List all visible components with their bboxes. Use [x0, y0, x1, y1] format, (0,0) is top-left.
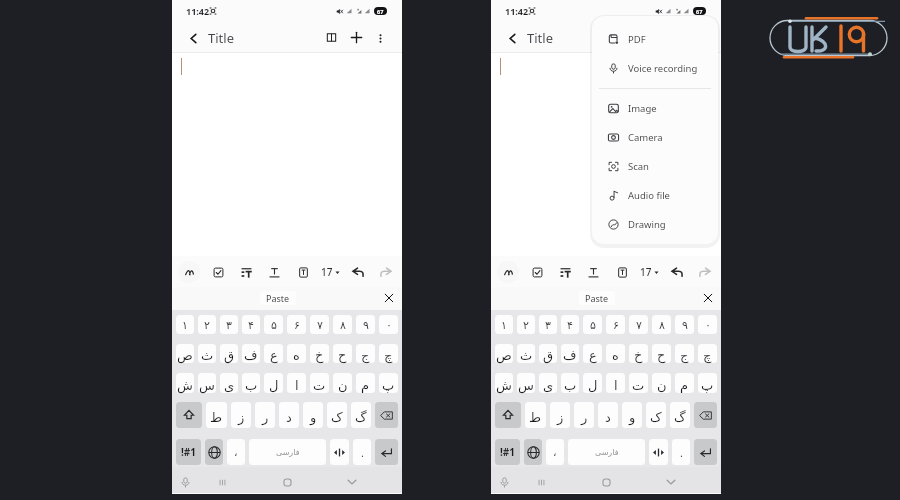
button[interactable]: ب — [561, 373, 579, 393]
button[interactable]: Period — [672, 439, 690, 465]
button[interactable]: ف — [561, 344, 579, 363]
button[interactable]: 17 — [640, 265, 659, 279]
button[interactable]: خ — [629, 344, 648, 363]
button[interactable]: ۶ — [606, 315, 625, 334]
button[interactable]: PDF — [592, 25, 718, 54]
button[interactable]: ف — [242, 344, 260, 363]
button[interactable]: ۳ — [220, 315, 238, 334]
button[interactable]: ز — [550, 402, 570, 428]
button[interactable]: د — [279, 402, 299, 428]
button[interactable]: ق — [539, 344, 557, 363]
button[interactable]: Enter — [375, 439, 398, 465]
button[interactable]: 17 — [321, 265, 340, 279]
button[interactable]: ث — [198, 344, 216, 363]
button[interactable]: ص — [495, 344, 513, 363]
button[interactable]: Redo — [376, 262, 396, 282]
button[interactable]: ص — [176, 344, 194, 363]
button[interactable]: Undo — [667, 262, 687, 282]
button[interactable]: ق — [220, 344, 238, 363]
button[interactable]: Cursor — [330, 439, 349, 465]
button[interactable]: پ — [379, 373, 398, 393]
button[interactable]: Close — [700, 290, 716, 306]
button[interactable]: Recents — [530, 471, 552, 493]
button[interactable]: Scan — [592, 152, 718, 181]
button[interactable]: Back — [179, 24, 207, 52]
button[interactable]: Redo — [695, 262, 715, 282]
button[interactable]: Pen — [497, 261, 519, 283]
button[interactable]: ر — [574, 402, 594, 428]
button[interactable]: Back — [498, 24, 526, 52]
button[interactable]: ۸ — [333, 315, 352, 334]
button[interactable]: View mode — [638, 25, 663, 50]
button[interactable]: ۹ — [675, 315, 694, 334]
button[interactable]: Text style — [583, 262, 603, 282]
button[interactable]: ن — [652, 373, 671, 393]
button[interactable]: Voice input — [174, 471, 196, 493]
button[interactable]: Paragraph — [555, 262, 575, 282]
button[interactable]: Symbols — [495, 439, 520, 465]
button[interactable]: ح — [333, 344, 352, 363]
button[interactable]: Paste — [266, 292, 290, 304]
button[interactable]: Pen — [178, 261, 200, 283]
button[interactable]: ۴ — [561, 315, 579, 334]
button[interactable]: Comma — [546, 439, 564, 465]
button[interactable]: ک — [646, 402, 666, 428]
button[interactable]: ل — [583, 373, 602, 393]
button[interactable]: ج — [356, 344, 375, 363]
button[interactable]: Camera — [592, 123, 718, 152]
button[interactable]: ۲ — [198, 315, 216, 334]
button[interactable]: Space — [568, 439, 645, 465]
button[interactable]: چ — [379, 344, 398, 363]
button[interactable]: د — [598, 402, 618, 428]
button[interactable]: ۰ — [379, 315, 398, 334]
button[interactable]: Space — [249, 439, 326, 465]
button[interactable]: ج — [675, 344, 694, 363]
button[interactable]: Close — [381, 290, 397, 306]
button[interactable]: Insert — [293, 262, 313, 282]
button[interactable]: ع — [264, 344, 283, 363]
button[interactable]: Shift — [495, 402, 521, 428]
button[interactable]: Text style — [264, 262, 284, 282]
button[interactable]: Backspace — [375, 402, 398, 428]
button[interactable]: ۶ — [287, 315, 306, 334]
button[interactable]: Home — [595, 471, 617, 493]
button[interactable]: ز — [231, 402, 251, 428]
button[interactable]: Home — [276, 471, 298, 493]
button[interactable]: ع — [583, 344, 602, 363]
button[interactable]: ل — [264, 373, 283, 393]
button[interactable]: چ — [698, 344, 717, 363]
button[interactable]: ه — [287, 344, 306, 363]
button[interactable]: More options — [369, 27, 391, 49]
button[interactable]: ط — [206, 402, 227, 428]
button[interactable]: Checklist — [527, 262, 547, 282]
button[interactable]: و — [303, 402, 323, 428]
button[interactable]: Insert — [612, 262, 632, 282]
button[interactable]: ه — [606, 344, 625, 363]
button[interactable]: خ — [310, 344, 329, 363]
button[interactable]: ی — [539, 373, 557, 393]
button[interactable]: ت — [310, 373, 329, 393]
button[interactable]: م — [356, 373, 375, 393]
button[interactable]: Drawing — [592, 210, 718, 239]
button[interactable]: Hide keyboard — [341, 471, 363, 493]
button[interactable]: ۷ — [310, 315, 329, 334]
button[interactable]: Language — [205, 439, 223, 465]
button[interactable]: ک — [327, 402, 347, 428]
button[interactable]: ح — [652, 344, 671, 363]
button[interactable]: Hide keyboard — [660, 471, 682, 493]
button[interactable]: Comma — [227, 439, 245, 465]
button[interactable]: ا — [606, 373, 625, 393]
button[interactable]: ۱ — [176, 315, 194, 334]
button[interactable]: م — [675, 373, 694, 393]
button[interactable]: ۹ — [356, 315, 375, 334]
button[interactable]: ۵ — [583, 315, 602, 334]
button[interactable]: Paste — [585, 292, 609, 304]
button[interactable]: گ — [670, 402, 690, 428]
button[interactable]: ش — [495, 373, 513, 393]
button[interactable]: Undo — [348, 262, 368, 282]
button[interactable]: ب — [242, 373, 260, 393]
button[interactable]: و — [622, 402, 642, 428]
button[interactable]: ۱ — [495, 315, 513, 334]
